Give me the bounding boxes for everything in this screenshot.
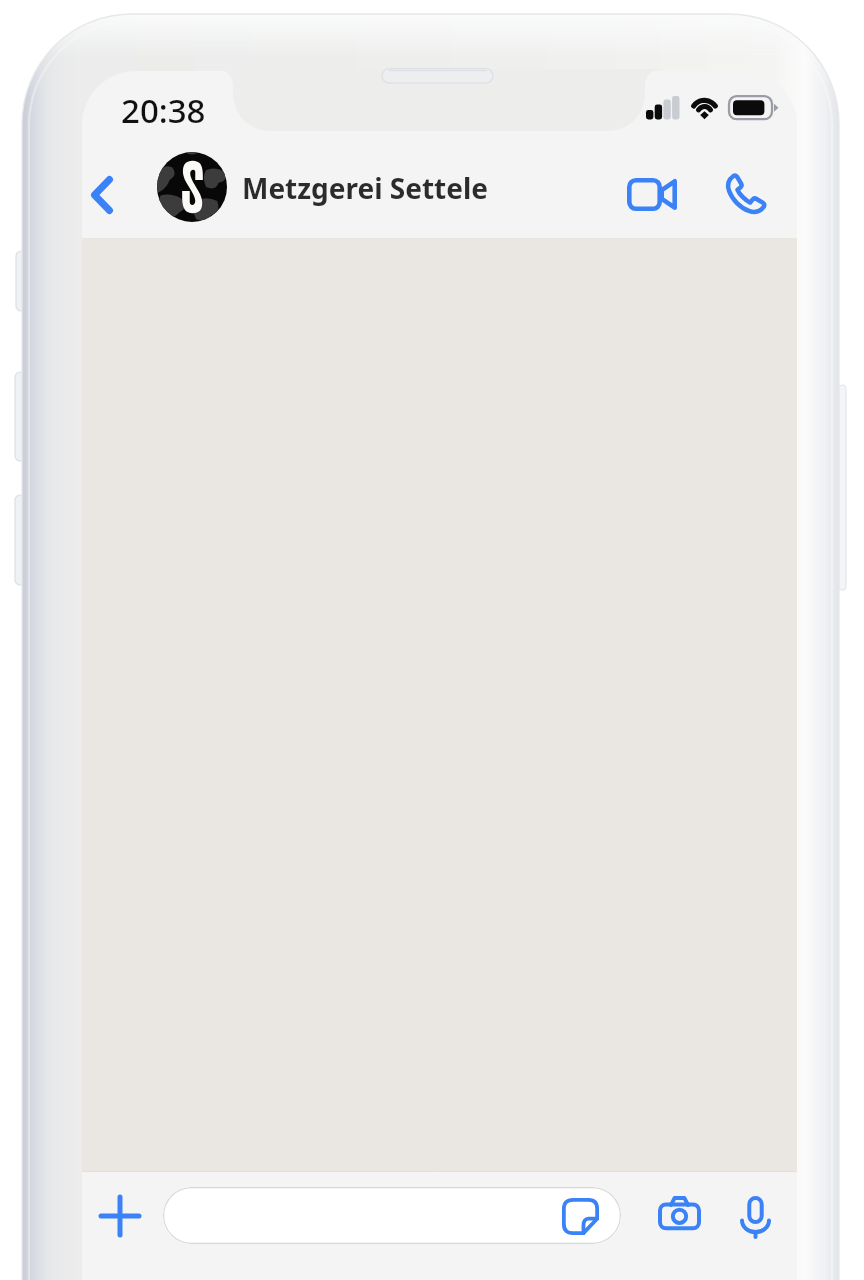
button[interactable]: Voice message	[721, 1183, 789, 1251]
button[interactable]: Voice call	[710, 165, 780, 235]
button[interactable]: Metzgerei Settele	[157, 152, 489, 222]
button[interactable]: Attach	[90, 1186, 150, 1246]
button[interactable]	[163, 1187, 621, 1244]
button[interactable]: Video call	[617, 165, 687, 235]
button[interactable]: Back	[82, 160, 137, 230]
staticText: 20:38	[121, 88, 206, 133]
staticText: Metzgerei Settele	[242, 169, 489, 207]
button[interactable]: Camera	[645, 1179, 713, 1247]
